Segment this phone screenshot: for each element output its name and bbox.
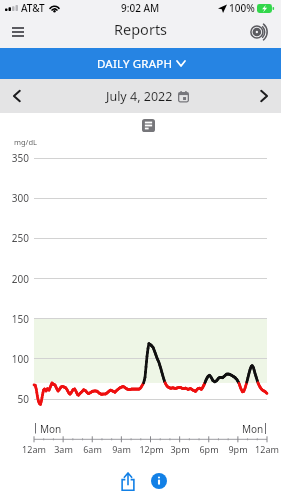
button[interactable]: Next day: [249, 81, 279, 111]
button[interactable]: Menu: [4, 18, 32, 46]
staticText: 250: [11, 231, 29, 245]
staticText: 9pm: [228, 443, 248, 455]
button[interactable]: Previous day: [2, 81, 32, 111]
staticText: 150: [11, 312, 29, 326]
staticText: Mon: [242, 422, 264, 436]
button[interactable]: Sensor status: [249, 18, 277, 46]
staticText: 12pm: [139, 443, 164, 455]
staticText: Mon: [40, 422, 62, 436]
staticText: 12am: [22, 443, 46, 455]
staticText: 50: [17, 392, 29, 406]
staticText: 350: [11, 151, 29, 165]
button[interactable]: July 4, 2022: [106, 88, 189, 105]
staticText: July 4, 2022: [106, 88, 173, 105]
staticText: 6am: [83, 443, 102, 455]
staticText: Reports: [114, 19, 168, 39]
staticText: AT&T: [21, 1, 45, 15]
button[interactable]: Info: [144, 466, 174, 496]
staticText: DAILY GRAPH: [97, 56, 173, 72]
staticText: 9am: [112, 443, 131, 455]
staticText: mg/dL: [14, 137, 37, 147]
staticText: 100%: [229, 1, 255, 15]
staticText: 6pm: [199, 443, 219, 455]
button[interactable]: Chart options: [137, 114, 159, 136]
staticText: 300: [11, 191, 29, 205]
staticText: 100: [11, 352, 29, 366]
staticText: 200: [11, 272, 29, 286]
staticText: 3pm: [170, 443, 190, 455]
button[interactable]: Share: [113, 466, 143, 496]
staticText: 3am: [54, 443, 73, 455]
staticText: 9:02 AM: [121, 1, 160, 15]
staticText: 12am: [255, 443, 279, 455]
button[interactable]: DAILY GRAPH: [0, 48, 281, 79]
